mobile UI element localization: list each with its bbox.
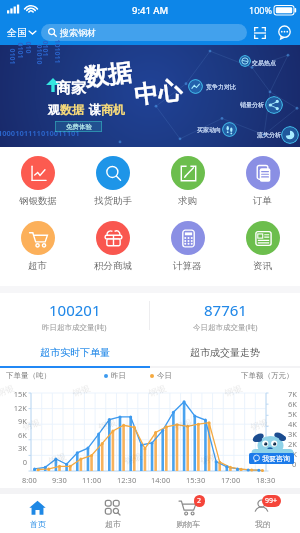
staticText: 4K [288, 419, 297, 429]
button[interactable]: 超市实时下单量 [0, 338, 150, 366]
staticText: 买家动向 [197, 126, 221, 134]
staticText: 昨日 [111, 371, 126, 380]
staticText: 订单 [253, 195, 272, 207]
staticText: 12K [1, 403, 27, 413]
button[interactable]: 计算器 [150, 221, 225, 272]
staticText: 钢银 [199, 450, 219, 467]
staticText: 下单额（万元） [241, 371, 294, 380]
button[interactable]: 超市成交量走势 [150, 338, 300, 366]
staticText: 0101 [6, 48, 16, 65]
staticText: 交易热点 [252, 59, 276, 67]
button[interactable]: 订单 [225, 156, 300, 207]
button[interactable]: 超市 [75, 494, 150, 533]
button[interactable]: 钢银数据 [0, 156, 75, 207]
staticText: 钢银数据 [19, 195, 57, 207]
staticText: 9K [1, 416, 27, 426]
staticText: 求购 [178, 195, 197, 207]
staticText: 15:30 [186, 475, 206, 485]
staticText: 0 [292, 459, 297, 467]
staticText: 找货助手 [94, 195, 132, 207]
button[interactable]: 2 [150, 494, 225, 533]
button[interactable]: 资讯 [225, 221, 300, 272]
staticText: 首页 [30, 519, 46, 529]
button[interactable]: 找货助手 [75, 156, 150, 207]
button[interactable]: 100201 [0, 300, 149, 332]
staticText: 谋 [89, 102, 101, 117]
staticText: 8:00 [22, 475, 37, 485]
staticText: 2K [288, 439, 297, 449]
staticText: 11:00 [82, 475, 102, 485]
staticText: 数据 [60, 102, 84, 117]
button[interactable]: 我要咨询 [249, 453, 294, 464]
button[interactable]: 消息 [272, 20, 297, 45]
staticText: 计算器 [173, 260, 202, 272]
staticText: 15K [1, 389, 27, 399]
staticText: 99+ [265, 496, 278, 506]
staticText: 2 [197, 496, 202, 506]
button[interactable]: 首页 [0, 494, 75, 533]
staticText: 钢银 [173, 416, 193, 433]
button[interactable]: 99+ [225, 494, 300, 533]
staticText: 中心 [132, 75, 184, 111]
staticText: 购物车 [176, 519, 200, 529]
staticText: 9:30 [52, 475, 67, 485]
button[interactable]: 搜索钢材 [41, 24, 247, 41]
staticText: 12:30 [117, 475, 137, 485]
staticText: 钢银 [275, 450, 295, 467]
staticText: 超市 [105, 519, 121, 529]
staticText: 100% [249, 4, 272, 16]
staticText: 钢银 [123, 450, 143, 467]
staticText: 3K [1, 443, 27, 453]
staticText: 商家 [56, 79, 86, 98]
staticText: 超市成交量走势 [190, 346, 260, 359]
staticText: 竞争力对比 [206, 83, 236, 91]
button[interactable]: 超市 [0, 221, 75, 272]
staticText: 钢银 [97, 416, 117, 433]
staticText: 87761 [204, 300, 247, 320]
button[interactable]: 87761 [150, 300, 300, 332]
staticText: 5K [288, 409, 297, 419]
staticText: 钢银 [47, 450, 67, 467]
staticText: 免费体验 [66, 123, 92, 131]
staticText: 今日 [157, 371, 172, 380]
staticText: 0 [1, 457, 27, 467]
staticText: 下单量（吨） [6, 371, 51, 380]
staticText: 今日超市成交量(吨) [193, 322, 258, 332]
staticText: 1K [288, 449, 297, 459]
button[interactable]: 积分商城 [75, 221, 150, 272]
staticText: 商机 [101, 102, 125, 117]
staticText: 钢银 [0, 382, 15, 399]
staticText: 超市 [28, 260, 47, 272]
staticText: 搜索钢材 [60, 27, 96, 38]
staticText: 0101 [39, 40, 49, 57]
staticText: 01010 [33, 44, 43, 65]
staticText: 钢银 [71, 382, 91, 399]
staticText: 我的 [255, 519, 271, 529]
staticText: 销量分析 [240, 101, 264, 109]
staticText: 昨日超市成交量(吨) [42, 322, 107, 332]
staticText: 钢银 [147, 382, 167, 399]
staticText: 17:00 [221, 475, 241, 485]
staticText: 资讯 [253, 260, 272, 272]
button[interactable]: 求购 [150, 156, 225, 207]
button[interactable]: 全国 [7, 26, 41, 39]
staticText: 全国 [7, 26, 27, 39]
staticText: 100201 [49, 300, 101, 320]
staticText: 101011 [51, 39, 61, 64]
staticText: 0101 [14, 42, 24, 59]
button[interactable]: 免费体验 [55, 121, 102, 132]
staticText: 9:41 AM [132, 4, 169, 17]
staticText: 7K [288, 389, 297, 399]
staticText: 积分商城 [94, 260, 132, 272]
staticText: 我要咨询 [262, 454, 290, 463]
staticText: 6K [1, 430, 27, 440]
staticText: 观 [48, 102, 60, 117]
staticText: 14:00 [151, 475, 171, 485]
button[interactable]: 扫一扫 [247, 20, 272, 45]
staticText: 数据 [82, 57, 134, 93]
staticText: 010 [22, 41, 32, 54]
staticText: 流失分析 [257, 131, 281, 139]
staticText: 1000101111010011101 [0, 128, 80, 138]
staticText: 钢银 [223, 382, 243, 399]
staticText: 3K [288, 429, 297, 439]
